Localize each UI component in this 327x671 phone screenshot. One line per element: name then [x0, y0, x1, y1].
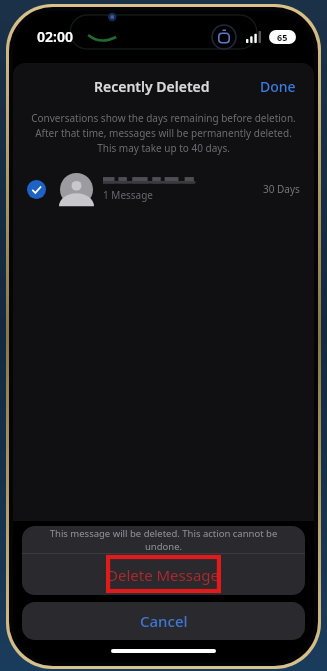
staticText: This message will be deleted. This actio…	[30, 527, 297, 553]
button[interactable]: Done	[254, 73, 302, 99]
other: Focus	[211, 24, 237, 50]
staticText: 02:00	[37, 27, 73, 46]
staticText: 65	[277, 31, 288, 43]
staticText: 1 Message	[103, 188, 154, 202]
staticText: Delete Message	[107, 565, 220, 585]
button[interactable]: 1 Message	[13, 165, 314, 213]
staticText: Done	[260, 77, 296, 95]
button[interactable]: Cancel	[22, 602, 305, 640]
staticText: Conversations show the days remaining be…	[29, 111, 298, 155]
button[interactable]: Delete Message	[22, 554, 305, 595]
staticText: 30 Days	[263, 182, 300, 196]
staticText: Recently Deleted	[94, 77, 210, 96]
staticText: Cancel	[140, 611, 188, 631]
